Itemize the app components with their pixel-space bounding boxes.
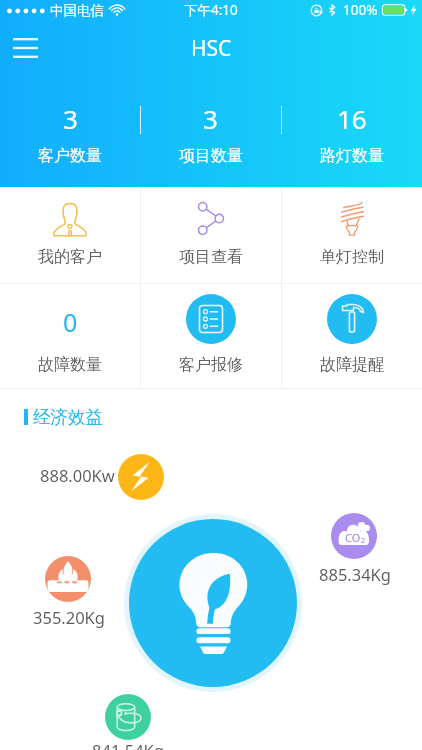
staticText: 单灯控制 (320, 247, 384, 267)
staticText: HSC (191, 34, 232, 63)
button[interactable]: Water saved (105, 694, 151, 740)
staticText: 100% (343, 1, 378, 19)
staticText: 经济效益 (33, 406, 103, 428)
button[interactable]: 0 (0, 284, 140, 388)
button[interactable]: Fault alert (282, 284, 422, 388)
button[interactable]: Customer repair (141, 284, 281, 388)
button[interactable]: Coal saved (45, 556, 91, 602)
staticText: 故障数量 (38, 355, 102, 375)
staticText: 888.00Kw (40, 464, 115, 486)
staticText: 3 (203, 101, 218, 136)
staticText: 885.34Kg (319, 563, 391, 585)
button[interactable]: 单灯控制 (282, 187, 422, 283)
other: Fault alert (327, 294, 377, 344)
button[interactable]: Open navigation menu (4, 27, 46, 69)
staticText: 0 (63, 305, 78, 339)
staticText: 项目查看 (179, 247, 243, 267)
staticText: 16 (337, 101, 367, 136)
button[interactable]: 3 (140, 68, 281, 187)
staticText: 355.20Kg (33, 606, 105, 628)
staticText: 841.54Kg (92, 739, 164, 750)
button[interactable]: 16 (281, 68, 422, 187)
staticText: 客户数量 (38, 146, 102, 166)
button[interactable]: CO2 reduced (331, 513, 377, 559)
button[interactable]: 项目查看 (141, 187, 281, 283)
staticText: 我的客户 (38, 247, 102, 267)
staticText: 中国电信 (50, 2, 104, 19)
button[interactable]: Energy saving total (129, 519, 297, 687)
staticText: 客户报修 (179, 355, 243, 375)
other: Customer repair (186, 294, 236, 344)
button[interactable]: Power generated (118, 454, 164, 500)
staticText: 2 (361, 536, 366, 546)
staticText: CO (345, 530, 361, 545)
staticText: 下午4:10 (184, 1, 238, 19)
staticText: 3 (63, 101, 78, 136)
staticText: 项目数量 (179, 146, 243, 166)
staticText: 路灯数量 (320, 146, 384, 166)
button[interactable]: 我的客户 (0, 187, 140, 283)
button[interactable]: 3 (0, 68, 140, 187)
staticText: 故障提醒 (320, 355, 384, 375)
